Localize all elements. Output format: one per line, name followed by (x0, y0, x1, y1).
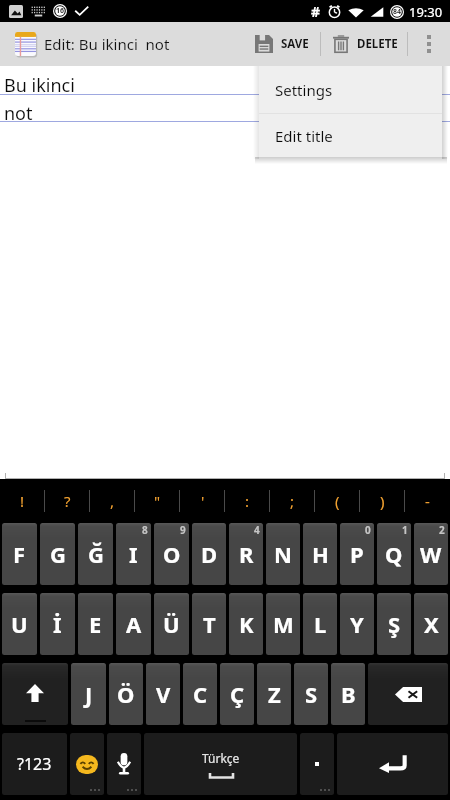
staticText: ) (380, 491, 385, 511)
staticText: D (201, 539, 218, 569)
staticText: G (50, 539, 66, 569)
staticText: Edit: Bu ikinci not (44, 34, 170, 54)
button[interactable]: Ğ (78, 523, 113, 585)
staticText: R (239, 539, 254, 569)
button[interactable]: Backspace (368, 663, 448, 725)
button[interactable]: T (192, 593, 226, 655)
button[interactable]: Ö (109, 663, 143, 725)
button[interactable]: More options (408, 22, 450, 66)
button[interactable]: Ü (154, 593, 189, 655)
button[interactable]: ( (315, 479, 360, 523)
staticText: Türkçe (202, 750, 240, 766)
button[interactable]: Q (377, 523, 411, 585)
button[interactable]: " (135, 479, 180, 523)
staticText: J (85, 679, 93, 709)
button[interactable]: F (2, 523, 37, 585)
staticText: S (305, 679, 318, 709)
staticText: 4 (254, 523, 260, 537)
button[interactable]: ? (45, 479, 90, 523)
staticText: İ (53, 609, 62, 639)
button[interactable]: C (183, 663, 217, 725)
button[interactable]: ) (360, 479, 405, 523)
button[interactable]: Z (257, 663, 291, 725)
button[interactable]: Enter (337, 733, 448, 795)
button[interactable]: Ş (377, 593, 411, 655)
staticText: 19:30 (409, 3, 443, 21)
staticText: - (425, 491, 430, 511)
button[interactable]: P (340, 523, 374, 585)
staticText: 8 (142, 523, 148, 537)
button[interactable]: - (405, 479, 450, 523)
button[interactable]: ; (270, 479, 315, 523)
button[interactable]: Türkçe (144, 733, 297, 795)
staticText: ? (64, 491, 71, 511)
button[interactable]: ! (0, 479, 45, 523)
staticText: O (163, 539, 181, 569)
button[interactable]: Y (340, 593, 374, 655)
staticText: B (341, 679, 356, 709)
staticText: T (203, 609, 216, 639)
button[interactable]: SAVE (249, 22, 320, 66)
staticText: A (126, 609, 142, 639)
staticText: W (420, 539, 442, 569)
button[interactable]: L (303, 593, 337, 655)
staticText: Ç (230, 679, 245, 709)
staticText: N (274, 539, 292, 569)
staticText: 2 (439, 523, 445, 537)
button[interactable]: G (40, 523, 75, 585)
staticText: SAVE (281, 36, 309, 52)
staticText: Y (350, 609, 364, 639)
button[interactable]: : (225, 479, 270, 523)
button[interactable]: D (192, 523, 226, 585)
button[interactable]: S (294, 663, 328, 725)
button[interactable]: ?123 (2, 733, 67, 795)
button[interactable]: E (78, 593, 113, 655)
staticText: M (273, 609, 294, 639)
button[interactable]: X (414, 593, 448, 655)
staticText: ' (201, 491, 205, 511)
button[interactable]: H (303, 523, 337, 585)
staticText: # (311, 2, 321, 21)
staticText: not (4, 101, 33, 121)
button[interactable]: K (229, 593, 263, 655)
button[interactable]: Voice input (107, 733, 141, 795)
staticText: Ü (163, 609, 180, 639)
button[interactable]: O (154, 523, 189, 585)
staticText: ! (20, 491, 25, 511)
staticText: Settings (275, 80, 333, 100)
staticText: I (129, 539, 138, 569)
button[interactable]: ' (180, 479, 225, 523)
button[interactable]: Ç (220, 663, 254, 725)
button[interactable]: V (146, 663, 180, 725)
staticText: " (154, 491, 161, 511)
staticText: Ş (388, 609, 401, 639)
button[interactable]: Emoji (70, 733, 104, 795)
staticText: Edit title (275, 126, 333, 146)
staticText: : (245, 491, 250, 511)
button[interactable]: , (90, 479, 135, 523)
staticText: L (314, 609, 327, 639)
button[interactable]: N (266, 523, 300, 585)
button[interactable]: W (414, 523, 448, 585)
button[interactable]: R (229, 523, 263, 585)
button[interactable]: M (266, 593, 300, 655)
button[interactable]: I (116, 523, 151, 585)
staticText: C (193, 679, 208, 709)
staticText: ( (335, 491, 340, 511)
button[interactable]: U (2, 593, 37, 655)
button[interactable]: A (116, 593, 151, 655)
button[interactable]: Shift (2, 663, 68, 725)
button[interactable]: DELETE (321, 22, 407, 66)
staticText: Ö (117, 679, 135, 709)
staticText: 84 (393, 7, 402, 17)
staticText: K (239, 609, 254, 639)
button[interactable]: Edit title (259, 114, 442, 157)
staticText: 0 (365, 523, 371, 537)
button[interactable]: İ (40, 593, 75, 655)
button[interactable]: B (331, 663, 365, 725)
button[interactable] (300, 733, 334, 795)
staticText: F (13, 539, 26, 569)
button[interactable]: J (71, 663, 106, 725)
button[interactable]: Settings (259, 66, 442, 113)
staticText: E (89, 609, 102, 639)
